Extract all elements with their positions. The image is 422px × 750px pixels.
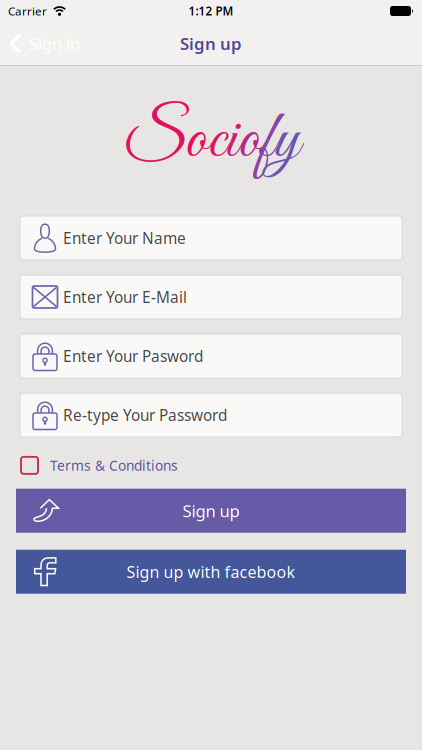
staticText: i	[226, 99, 238, 183]
button[interactable]: Enter Your Name	[20, 216, 402, 260]
button[interactable]: Enter Your Pasword	[20, 334, 402, 378]
staticText: Sign in	[29, 32, 80, 55]
staticText: o	[185, 99, 208, 183]
staticText: Enter Your E-Mail	[63, 287, 187, 307]
button[interactable]: Terms & Conditions	[0, 456, 422, 475]
staticText: c	[208, 99, 226, 183]
staticText: Sign up with facebook	[126, 561, 295, 583]
staticText: Enter Your Name	[63, 228, 186, 248]
staticText: Sign up	[180, 32, 242, 55]
staticText: o	[238, 99, 261, 183]
staticText: Terms & Conditions	[50, 456, 178, 475]
button[interactable]: Sign up with facebook	[16, 550, 406, 594]
staticText: 1:12 PM	[188, 3, 233, 19]
staticText: Enter Your Pasword	[63, 346, 203, 366]
staticText: Re-type Your Password	[63, 405, 227, 425]
staticText: Carrier	[8, 3, 47, 19]
staticText: f	[261, 99, 274, 183]
button[interactable]: Sign in	[9, 32, 80, 55]
button[interactable]: Sign up	[16, 489, 406, 533]
staticText: Sign up	[182, 499, 239, 522]
button[interactable]: Enter Your E-Mail	[20, 275, 402, 319]
staticText: y	[274, 99, 299, 183]
button[interactable]: Re-type Your Password	[20, 393, 402, 437]
staticText: S	[123, 99, 185, 183]
